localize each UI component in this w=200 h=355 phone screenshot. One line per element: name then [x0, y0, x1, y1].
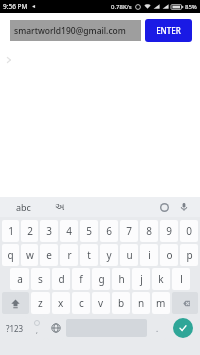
- button[interactable]: j: [132, 268, 150, 290]
- button[interactable]: 4: [60, 220, 78, 242]
- staticText: x: [58, 296, 64, 310]
- staticText: 2: [27, 224, 33, 238]
- staticText: smartworld190@gmail.com: [14, 25, 126, 37]
- staticText: 7: [126, 224, 132, 238]
- staticText: 1: [8, 224, 14, 238]
- button[interactable]: ?123: [2, 316, 27, 340]
- button[interactable]: n: [132, 292, 150, 314]
- staticText: k: [158, 272, 164, 286]
- button[interactable]: o: [160, 244, 178, 266]
- button[interactable]: Change language: [47, 316, 64, 340]
- staticText: b: [118, 296, 125, 310]
- button[interactable]: x: [52, 292, 70, 314]
- button[interactable]: 5: [80, 220, 98, 242]
- staticText: m: [156, 296, 166, 310]
- staticText: i: [148, 248, 151, 262]
- button[interactable]: abc: [12, 199, 35, 215]
- button[interactable]: d: [52, 268, 70, 290]
- staticText: 9: [166, 224, 172, 238]
- staticText: n: [138, 296, 145, 310]
- button[interactable]: 3: [40, 220, 58, 242]
- staticText: 8: [146, 224, 152, 238]
- staticText: h: [118, 272, 125, 286]
- staticText: f: [79, 272, 83, 286]
- staticText: abc: [16, 201, 31, 213]
- button[interactable]: 1: [2, 220, 19, 242]
- button[interactable]: 6: [100, 220, 118, 242]
- staticText: 4: [66, 224, 72, 238]
- staticText: u: [126, 248, 133, 262]
- button[interactable]: .: [149, 316, 166, 340]
- button[interactable]: Backspace: [172, 292, 198, 314]
- staticText: 9:56 PM: [3, 2, 28, 11]
- button[interactable]: e: [40, 244, 58, 266]
- button[interactable]: c: [72, 292, 90, 314]
- button[interactable]: t: [80, 244, 98, 266]
- button[interactable]: અ: [51, 201, 69, 214]
- button[interactable]: g: [92, 268, 110, 290]
- button[interactable]: Done: [173, 318, 193, 338]
- staticText: ENTER: [156, 25, 181, 36]
- staticText: r: [67, 248, 72, 262]
- button[interactable]: h: [112, 268, 130, 290]
- staticText: l: [180, 272, 183, 286]
- staticText: 0: [186, 224, 192, 238]
- staticText: 6: [106, 224, 112, 238]
- button[interactable]: s: [31, 268, 50, 290]
- button[interactable]: 0: [180, 220, 198, 242]
- button[interactable]: y: [100, 244, 118, 266]
- staticText: 3: [46, 224, 52, 238]
- button[interactable]: 8: [140, 220, 158, 242]
- staticText: ,: [36, 326, 38, 336]
- button[interactable]: r: [60, 244, 78, 266]
- button[interactable]: a: [10, 268, 29, 290]
- staticText: a: [17, 272, 23, 286]
- staticText: ?123: [6, 323, 24, 334]
- button[interactable]: w: [21, 244, 38, 266]
- button[interactable]: Emoji: [29, 316, 45, 340]
- button[interactable]: l: [172, 268, 190, 290]
- button[interactable]: 2: [21, 220, 38, 242]
- button[interactable]: 9: [160, 220, 178, 242]
- staticText: y: [106, 248, 112, 262]
- staticText: 0.78K/s: [111, 3, 132, 11]
- button[interactable]: i: [140, 244, 158, 266]
- staticText: e: [46, 248, 52, 262]
- staticText: d: [58, 272, 65, 286]
- staticText: g: [98, 272, 105, 286]
- staticText: 85%: [185, 3, 197, 11]
- button[interactable]: p: [180, 244, 198, 266]
- button[interactable]: m: [152, 292, 170, 314]
- staticText: z: [38, 296, 43, 310]
- button[interactable]: b: [112, 292, 130, 314]
- button[interactable]: k: [152, 268, 170, 290]
- staticText: .: [156, 323, 159, 334]
- staticText: o: [166, 248, 173, 262]
- staticText: j: [140, 272, 143, 286]
- button[interactable]: q: [2, 244, 19, 266]
- button[interactable]: 7: [120, 220, 138, 242]
- staticText: q: [7, 248, 14, 262]
- staticText: 5: [86, 224, 92, 238]
- staticText: s: [38, 272, 43, 286]
- staticText: w: [26, 248, 34, 262]
- button[interactable]: Voice input: [176, 199, 192, 215]
- button[interactable]: v: [92, 292, 110, 314]
- button[interactable]: f: [72, 268, 90, 290]
- staticText: p: [186, 248, 193, 262]
- button[interactable]: Shift: [2, 292, 29, 314]
- staticText: અ: [55, 203, 65, 212]
- staticText: c: [79, 296, 84, 310]
- button[interactable]: z: [31, 292, 50, 314]
- button[interactable]: u: [120, 244, 138, 266]
- button[interactable]: Help: [156, 199, 172, 215]
- button[interactable]: ENTER: [145, 19, 192, 42]
- staticText: t: [87, 248, 91, 262]
- button[interactable]: smartworld190@gmail.com: [10, 20, 141, 41]
- staticText: v: [98, 296, 104, 310]
